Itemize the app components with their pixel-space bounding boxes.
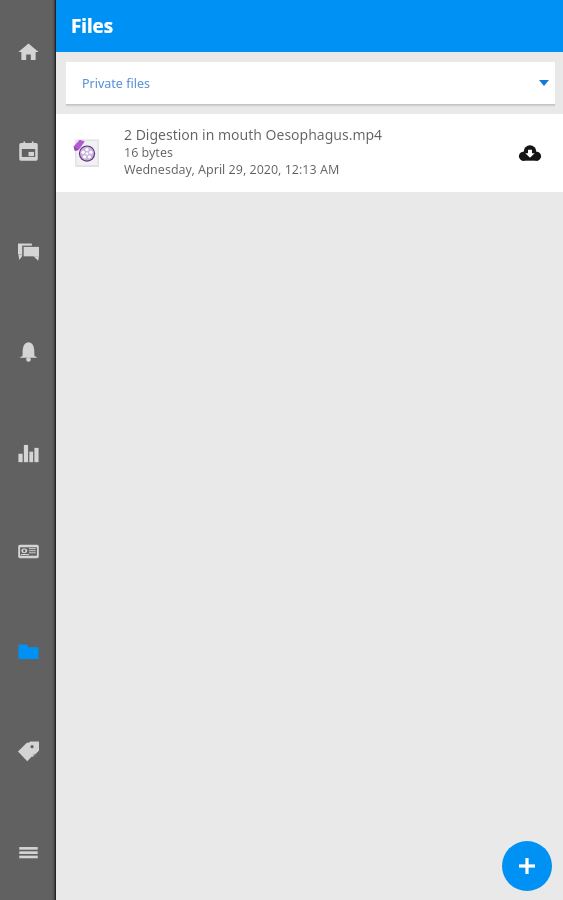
- staticText: 2 Digestion in mouth Oesophagus.mp4: [124, 125, 383, 144]
- button[interactable]: Calendar: [0, 126, 56, 176]
- button[interactable]: Messages: [0, 226, 56, 276]
- staticText: 16 bytes: [124, 144, 173, 161]
- button[interactable]: Menu: [0, 827, 56, 877]
- staticText: Files: [71, 13, 114, 39]
- button[interactable]: 2 Digestion in mouth Oesophagus.mp4: [56, 114, 563, 192]
- button[interactable]: Add: [502, 841, 552, 891]
- staticText: Private files: [82, 75, 150, 92]
- button[interactable]: Notifications: [0, 326, 56, 376]
- button[interactable]: Statistics: [0, 427, 56, 477]
- button[interactable]: Home: [0, 26, 56, 76]
- button[interactable]: Tags: [0, 726, 56, 776]
- button[interactable]: Download: [508, 131, 552, 175]
- staticText: Wednesday, April 29, 2020, 12:13 AM: [124, 161, 340, 178]
- button[interactable]: Files: [0, 626, 56, 676]
- button[interactable]: Contacts: [0, 526, 56, 576]
- button[interactable]: Private files: [66, 62, 555, 104]
